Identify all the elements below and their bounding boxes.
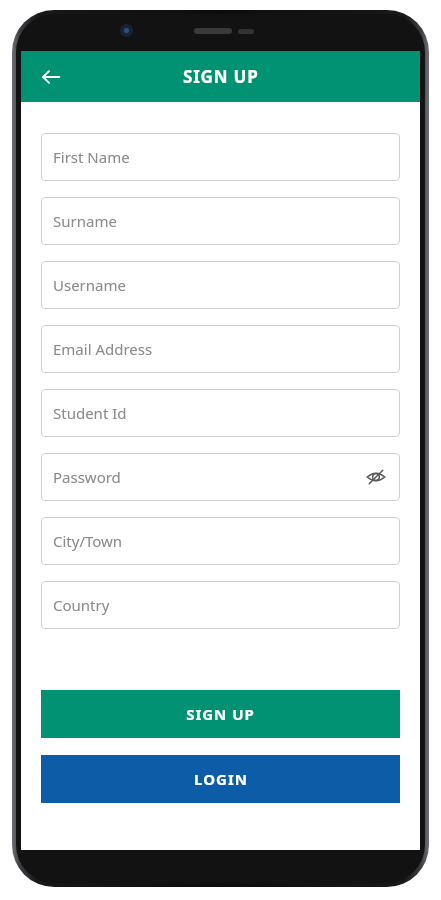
staticText: Username [53, 275, 126, 295]
staticText: SIGN UP [183, 65, 259, 88]
button[interactable]: Student Id [41, 389, 400, 437]
button[interactable]: Country [41, 581, 400, 629]
button[interactable]: Username [41, 261, 400, 309]
button[interactable]: Password [41, 453, 400, 501]
button[interactable]: Email Address [41, 325, 400, 373]
button[interactable]: First Name [41, 133, 400, 181]
button[interactable]: City/Town [41, 517, 400, 565]
staticText: Surname [53, 211, 117, 231]
staticText: Country [53, 595, 110, 615]
staticText: City/Town [53, 531, 123, 551]
staticText: Student Id [53, 403, 127, 423]
staticText: First Name [53, 147, 130, 167]
button[interactable]: Surname [41, 197, 400, 245]
button[interactable]: Toggle password visibility [362, 463, 390, 491]
button[interactable]: SIGN UP [41, 690, 400, 738]
staticText: Password [53, 467, 121, 487]
button[interactable]: Back [29, 55, 73, 99]
button[interactable]: LOGIN [41, 755, 400, 803]
staticText: LOGIN [194, 769, 248, 789]
staticText: SIGN UP [186, 704, 255, 724]
staticText: Email Address [53, 339, 153, 359]
